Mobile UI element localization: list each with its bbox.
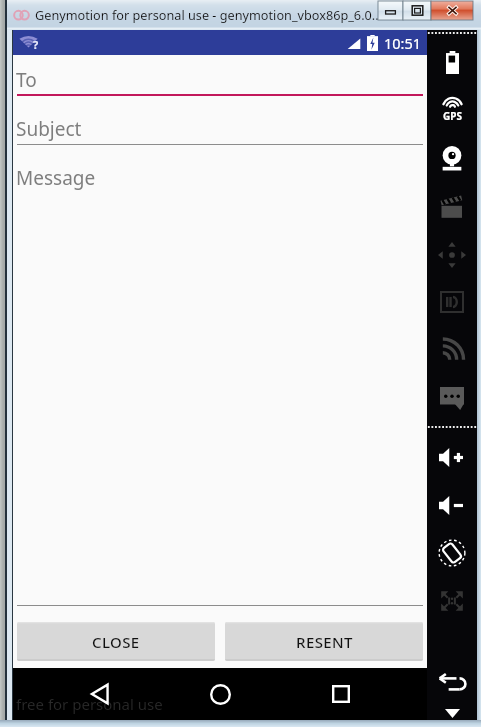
button[interactable]: Record screen: [427, 187, 477, 227]
staticText: Genymotion for personal use - genymotion…: [35, 6, 382, 23]
button[interactable]: Camera: [427, 138, 477, 178]
button[interactable]: Close: [431, 1, 473, 20]
button[interactable]: RESENT: [225, 622, 423, 661]
button[interactable]: Accelerometer: [427, 235, 477, 275]
button[interactable]: Back: [78, 672, 122, 716]
button[interactable]: Volume up: [427, 437, 477, 477]
button[interactable]: Volume down: [427, 485, 477, 525]
staticText: ?: [33, 37, 39, 52]
staticText: Message: [16, 165, 96, 191]
button[interactable]: Fullscreen: [427, 581, 477, 621]
staticText: To: [16, 67, 37, 93]
button[interactable]: CLOSE: [17, 622, 215, 661]
button[interactable]: Maximize: [403, 1, 431, 20]
staticText: GPS: [443, 109, 462, 123]
staticText: 10:51: [384, 33, 422, 53]
button[interactable]: Home: [198, 672, 242, 716]
button[interactable]: Battery: [427, 42, 477, 82]
staticText: free for personal use: [16, 694, 163, 714]
button[interactable]: Rotate: [427, 533, 477, 573]
button[interactable]: Recent apps: [319, 672, 363, 716]
staticText: RESENT: [296, 632, 353, 652]
staticText: CLOSE: [92, 632, 140, 652]
button[interactable]: SMS: [427, 378, 477, 418]
button[interactable]: Identifiers: [427, 282, 477, 322]
button[interactable]: GPS: [427, 90, 477, 130]
button[interactable]: Back: [427, 662, 477, 702]
button[interactable]: More: [427, 693, 477, 727]
button[interactable]: Minimize: [378, 1, 403, 20]
button[interactable]: Network: [427, 330, 477, 370]
staticText: Subject: [16, 116, 82, 142]
